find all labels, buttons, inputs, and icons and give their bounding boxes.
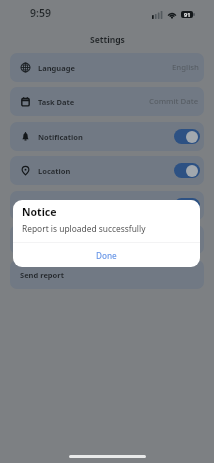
button[interactable]: Language bbox=[10, 53, 204, 82]
staticText: Notice bbox=[22, 205, 57, 219]
button[interactable]: Notification bbox=[10, 122, 204, 151]
staticText: Report is uploaded successfully bbox=[22, 223, 146, 234]
staticText: English bbox=[172, 62, 199, 73]
staticText: Dark mode bbox=[20, 201, 62, 211]
staticText: Done bbox=[96, 250, 117, 261]
staticText: 91 bbox=[184, 11, 191, 18]
staticText: Language bbox=[38, 63, 75, 73]
button[interactable]: Send report bbox=[10, 260, 204, 289]
staticText: 9:59 bbox=[30, 6, 51, 20]
staticText: Task Date bbox=[38, 97, 75, 107]
staticText: Commit Date bbox=[149, 96, 199, 107]
button[interactable]: Done bbox=[13, 243, 200, 267]
button[interactable]: Toggle Dark mode bbox=[174, 198, 200, 213]
staticText: Settings bbox=[90, 34, 125, 46]
button[interactable]: Task Date bbox=[10, 87, 204, 116]
staticText: Notification bbox=[38, 132, 83, 142]
button[interactable]: Toggle Location bbox=[174, 163, 200, 178]
staticText: Location bbox=[38, 166, 71, 176]
button[interactable]: Location bbox=[10, 156, 204, 185]
button[interactable]: Toggle Notification bbox=[174, 129, 200, 144]
button[interactable]: About bbox=[10, 225, 204, 254]
staticText: About bbox=[20, 235, 43, 245]
button[interactable]: Dark mode bbox=[10, 191, 204, 220]
staticText: Send report bbox=[20, 270, 64, 280]
